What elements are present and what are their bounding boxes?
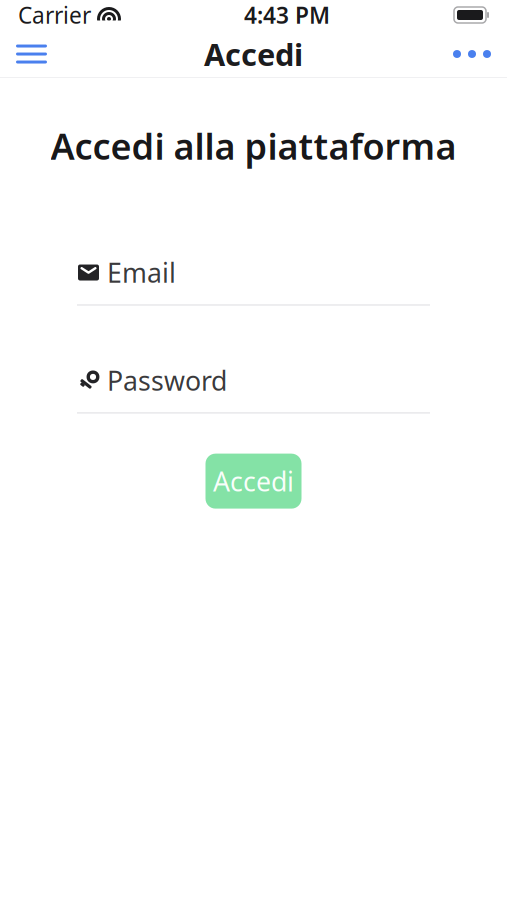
staticText: Carrier <box>18 0 91 30</box>
staticText: Email <box>107 255 176 290</box>
button[interactable]: Menu <box>0 32 63 75</box>
staticText: Accedi <box>204 34 303 74</box>
button[interactable]: Accedi <box>205 454 301 509</box>
staticText: Accedi <box>213 463 294 499</box>
staticText: 4:43 PM <box>244 0 330 30</box>
button[interactable]: More options <box>437 34 507 74</box>
staticText: Accedi alla piattaforma <box>50 122 456 170</box>
staticText: Password <box>107 363 227 398</box>
